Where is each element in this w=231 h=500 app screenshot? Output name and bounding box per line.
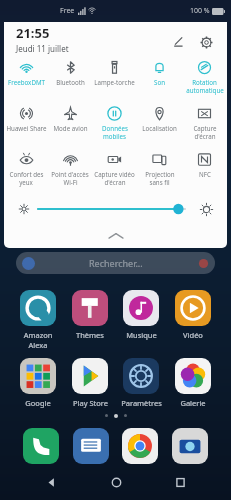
button[interactable]: Rotation bbox=[182, 56, 227, 102]
button[interactable]: Raise brightness bbox=[195, 198, 217, 220]
button[interactable]: Back bbox=[38, 469, 64, 495]
button[interactable]: Google bbox=[14, 358, 62, 408]
staticText: Google bbox=[25, 398, 51, 408]
staticText: Rechercher... bbox=[89, 257, 143, 269]
button[interactable]: Point d'accès bbox=[48, 148, 92, 194]
staticText: sans fil bbox=[149, 178, 170, 186]
staticText: automatique bbox=[186, 86, 224, 94]
staticText: Données bbox=[102, 124, 128, 132]
button[interactable]: Amazon Alexa bbox=[14, 290, 62, 350]
button[interactable]: Vidéo bbox=[169, 290, 217, 340]
button[interactable]: Galerie bbox=[169, 358, 217, 408]
staticText: Projection bbox=[145, 170, 175, 178]
button[interactable]: Chrome bbox=[122, 428, 158, 464]
button[interactable]: FreeboxDMT bbox=[4, 56, 48, 102]
staticText: 100 % bbox=[190, 6, 210, 16]
button[interactable]: Recents bbox=[167, 469, 193, 495]
staticText: Bluetooth bbox=[56, 78, 85, 86]
staticText: Galerie bbox=[180, 398, 206, 408]
staticText: Paramètres bbox=[121, 398, 162, 408]
button[interactable]: Mode avion bbox=[48, 102, 92, 148]
button[interactable]: Edit bbox=[167, 31, 189, 53]
button[interactable]: Thèmes bbox=[66, 290, 114, 340]
button[interactable]: Projection bbox=[137, 148, 182, 194]
staticText: FreeboxDMT bbox=[8, 78, 45, 86]
button[interactable]: Paramètres bbox=[117, 358, 165, 408]
staticText: Son bbox=[154, 78, 165, 86]
staticText: Musique bbox=[126, 330, 157, 340]
staticText: Play Store bbox=[73, 398, 108, 408]
button[interactable]: Lampe-torche bbox=[92, 56, 137, 102]
staticText: Lampe-torche bbox=[94, 78, 135, 86]
staticText: Mode avion bbox=[53, 124, 88, 132]
staticText: Rotation bbox=[192, 78, 217, 86]
button[interactable]: Son bbox=[137, 56, 182, 102]
staticText: Amazon Alexa bbox=[14, 330, 62, 350]
staticText: Huawei Share bbox=[6, 124, 47, 132]
staticText: Capture bbox=[193, 124, 217, 132]
button[interactable]: Phone bbox=[23, 428, 59, 464]
staticText: Confort des bbox=[9, 170, 44, 178]
button[interactable]: Rechercher... bbox=[16, 252, 215, 274]
staticText: d'écran bbox=[194, 132, 216, 140]
staticText: Thèmes bbox=[76, 330, 104, 340]
button[interactable]: Settings bbox=[195, 31, 217, 53]
button[interactable]: NFC bbox=[182, 148, 227, 194]
staticText: NFC bbox=[199, 170, 211, 178]
button[interactable]: Localisation bbox=[137, 102, 182, 148]
staticText: Localisation bbox=[142, 124, 177, 132]
button[interactable]: Collapse bbox=[4, 224, 227, 248]
button[interactable]: Données bbox=[92, 102, 137, 148]
staticText: Vidéo bbox=[183, 330, 203, 340]
staticText: Capture vidéo bbox=[94, 170, 135, 178]
staticText: 21:55 bbox=[16, 24, 50, 42]
staticText: d'écran bbox=[104, 178, 126, 186]
button[interactable]: Confort des bbox=[4, 148, 48, 194]
button[interactable]: Play Store bbox=[66, 358, 114, 408]
button[interactable]: Lower brightness bbox=[14, 199, 34, 219]
staticText: Wi-Fi bbox=[63, 178, 78, 186]
button[interactable]: Capture vidéo bbox=[92, 148, 137, 194]
staticText: Jeudi 11 juillet bbox=[16, 43, 69, 54]
staticText: Free bbox=[60, 6, 75, 16]
staticText: Point d'accès bbox=[51, 170, 89, 178]
button[interactable]: Capture bbox=[182, 102, 227, 148]
staticText: mobiles bbox=[103, 132, 126, 140]
button[interactable]: Home bbox=[103, 469, 129, 495]
button[interactable]: Bluetooth bbox=[48, 56, 92, 102]
button[interactable]: Musique bbox=[117, 290, 165, 340]
button[interactable]: Messages bbox=[73, 428, 109, 464]
button[interactable] bbox=[38, 199, 191, 219]
staticText: yeux bbox=[19, 178, 33, 186]
button[interactable]: Huawei Share bbox=[4, 102, 48, 148]
button[interactable]: Camera bbox=[172, 428, 208, 464]
